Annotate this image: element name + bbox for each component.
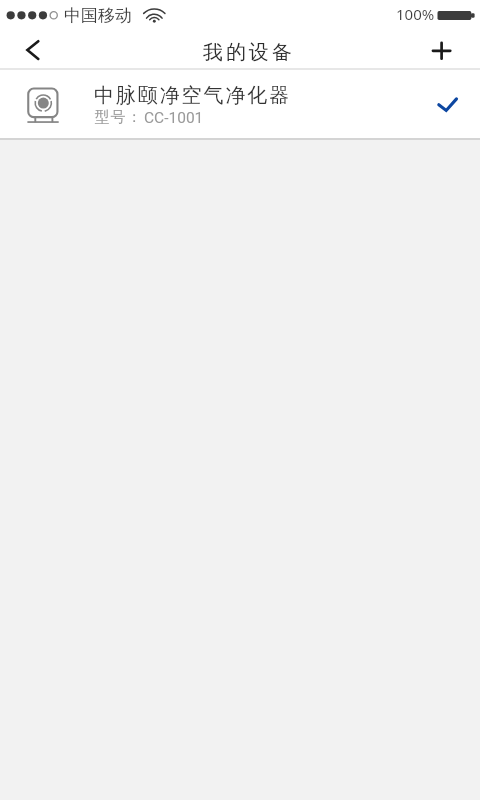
staticText: CC-1001 [144, 109, 204, 127]
staticText: 我的设备 [203, 40, 295, 65]
button[interactable]: 中脉颐净空气净化器 [0, 70, 480, 140]
staticText: 型号： [94, 108, 142, 127]
staticText: 中国移动 [64, 5, 132, 26]
staticText: 100% [396, 4, 435, 24]
button[interactable]: Add device [418, 28, 480, 70]
staticText: 中脉颐净空气净化器 [94, 83, 292, 108]
button[interactable]: Back [0, 28, 62, 70]
